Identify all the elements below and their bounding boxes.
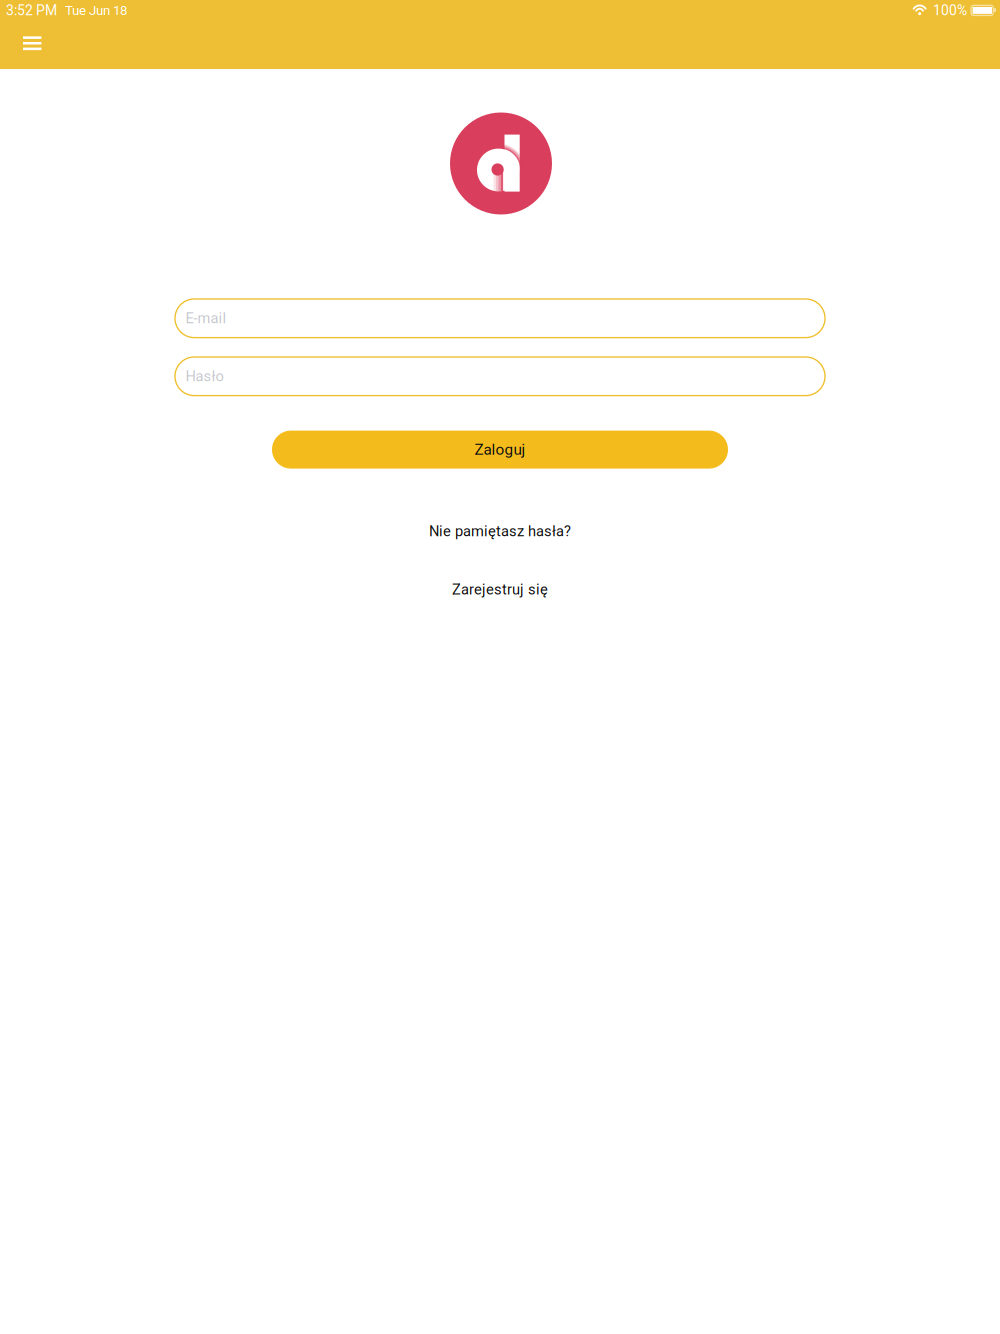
staticText: 100% — [933, 2, 967, 19]
button[interactable]: Zaloguj — [272, 431, 728, 469]
staticText: Zaloguj — [474, 441, 525, 459]
staticText: 3:52 PM — [6, 2, 57, 19]
button[interactable]: Menu — [0, 20, 57, 62]
button[interactable]: Nie pamiętasz hasła? — [429, 523, 571, 540]
staticText: Nie pamiętasz hasła? — [429, 523, 571, 540]
staticText: Hasło — [185, 368, 223, 385]
staticText: E-mail — [185, 310, 226, 327]
button[interactable]: Hasło — [175, 357, 825, 396]
button[interactable]: E-mail — [175, 299, 825, 338]
button[interactable]: Zarejestruj się — [452, 581, 548, 598]
staticText: Tue Jun 18 — [65, 3, 127, 18]
staticText: Zarejestruj się — [452, 581, 548, 598]
